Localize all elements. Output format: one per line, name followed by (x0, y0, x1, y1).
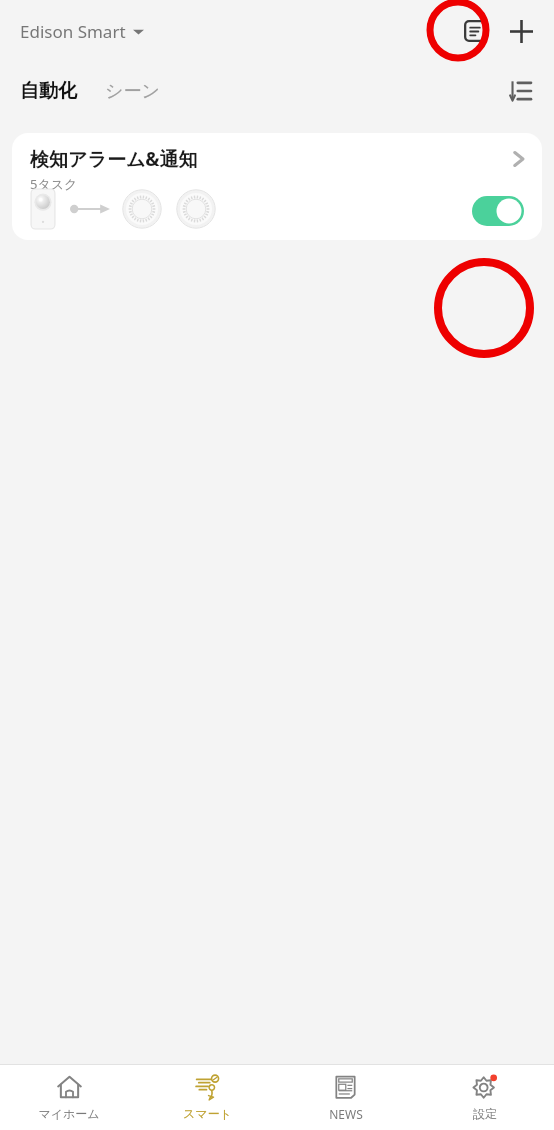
button[interactable]: 設定 (415, 1065, 554, 1130)
button[interactable]: シーン (99, 74, 166, 109)
button[interactable]: Messages (452, 8, 498, 54)
staticText: マイホーム (38, 1106, 100, 1121)
staticText: NEWS (329, 1106, 363, 1122)
staticText: 検知アラーム&通知 (30, 146, 198, 172)
button[interactable]: Edison Smart (16, 14, 148, 49)
button[interactable]: Sort (498, 69, 542, 113)
button[interactable]: Add (498, 8, 544, 54)
button[interactable]: スマート (138, 1065, 276, 1130)
button[interactable]: NEWS (276, 1065, 415, 1130)
staticText: スマート (183, 1106, 232, 1121)
staticText: 設定 (473, 1106, 497, 1121)
staticText: シーン (105, 80, 160, 103)
button[interactable]: Enable automation (472, 196, 524, 226)
staticText: Edison Smart (20, 20, 126, 43)
button[interactable]: 検知アラーム&通知 (12, 133, 542, 240)
staticText: 自動化 (20, 79, 77, 103)
button[interactable]: 自動化 (14, 73, 83, 109)
staticText: 5タスク (30, 175, 78, 193)
button[interactable]: マイホーム (0, 1065, 138, 1130)
